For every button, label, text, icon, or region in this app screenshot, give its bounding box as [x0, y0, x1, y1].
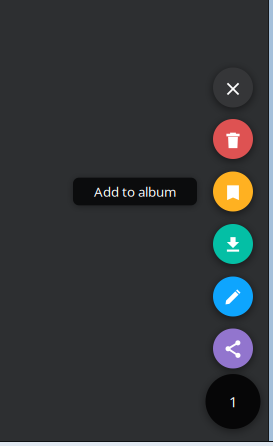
button[interactable]: Delete [213, 119, 253, 159]
staticText: Add to album [94, 183, 176, 200]
staticText: 1 [229, 392, 237, 411]
button[interactable]: Page 1 [205, 374, 260, 429]
button[interactable]: Share [213, 328, 253, 368]
button[interactable]: Edit [213, 276, 253, 316]
button[interactable]: Download [213, 224, 253, 264]
button[interactable]: Close [213, 67, 253, 107]
button[interactable]: Add to album [213, 171, 253, 211]
